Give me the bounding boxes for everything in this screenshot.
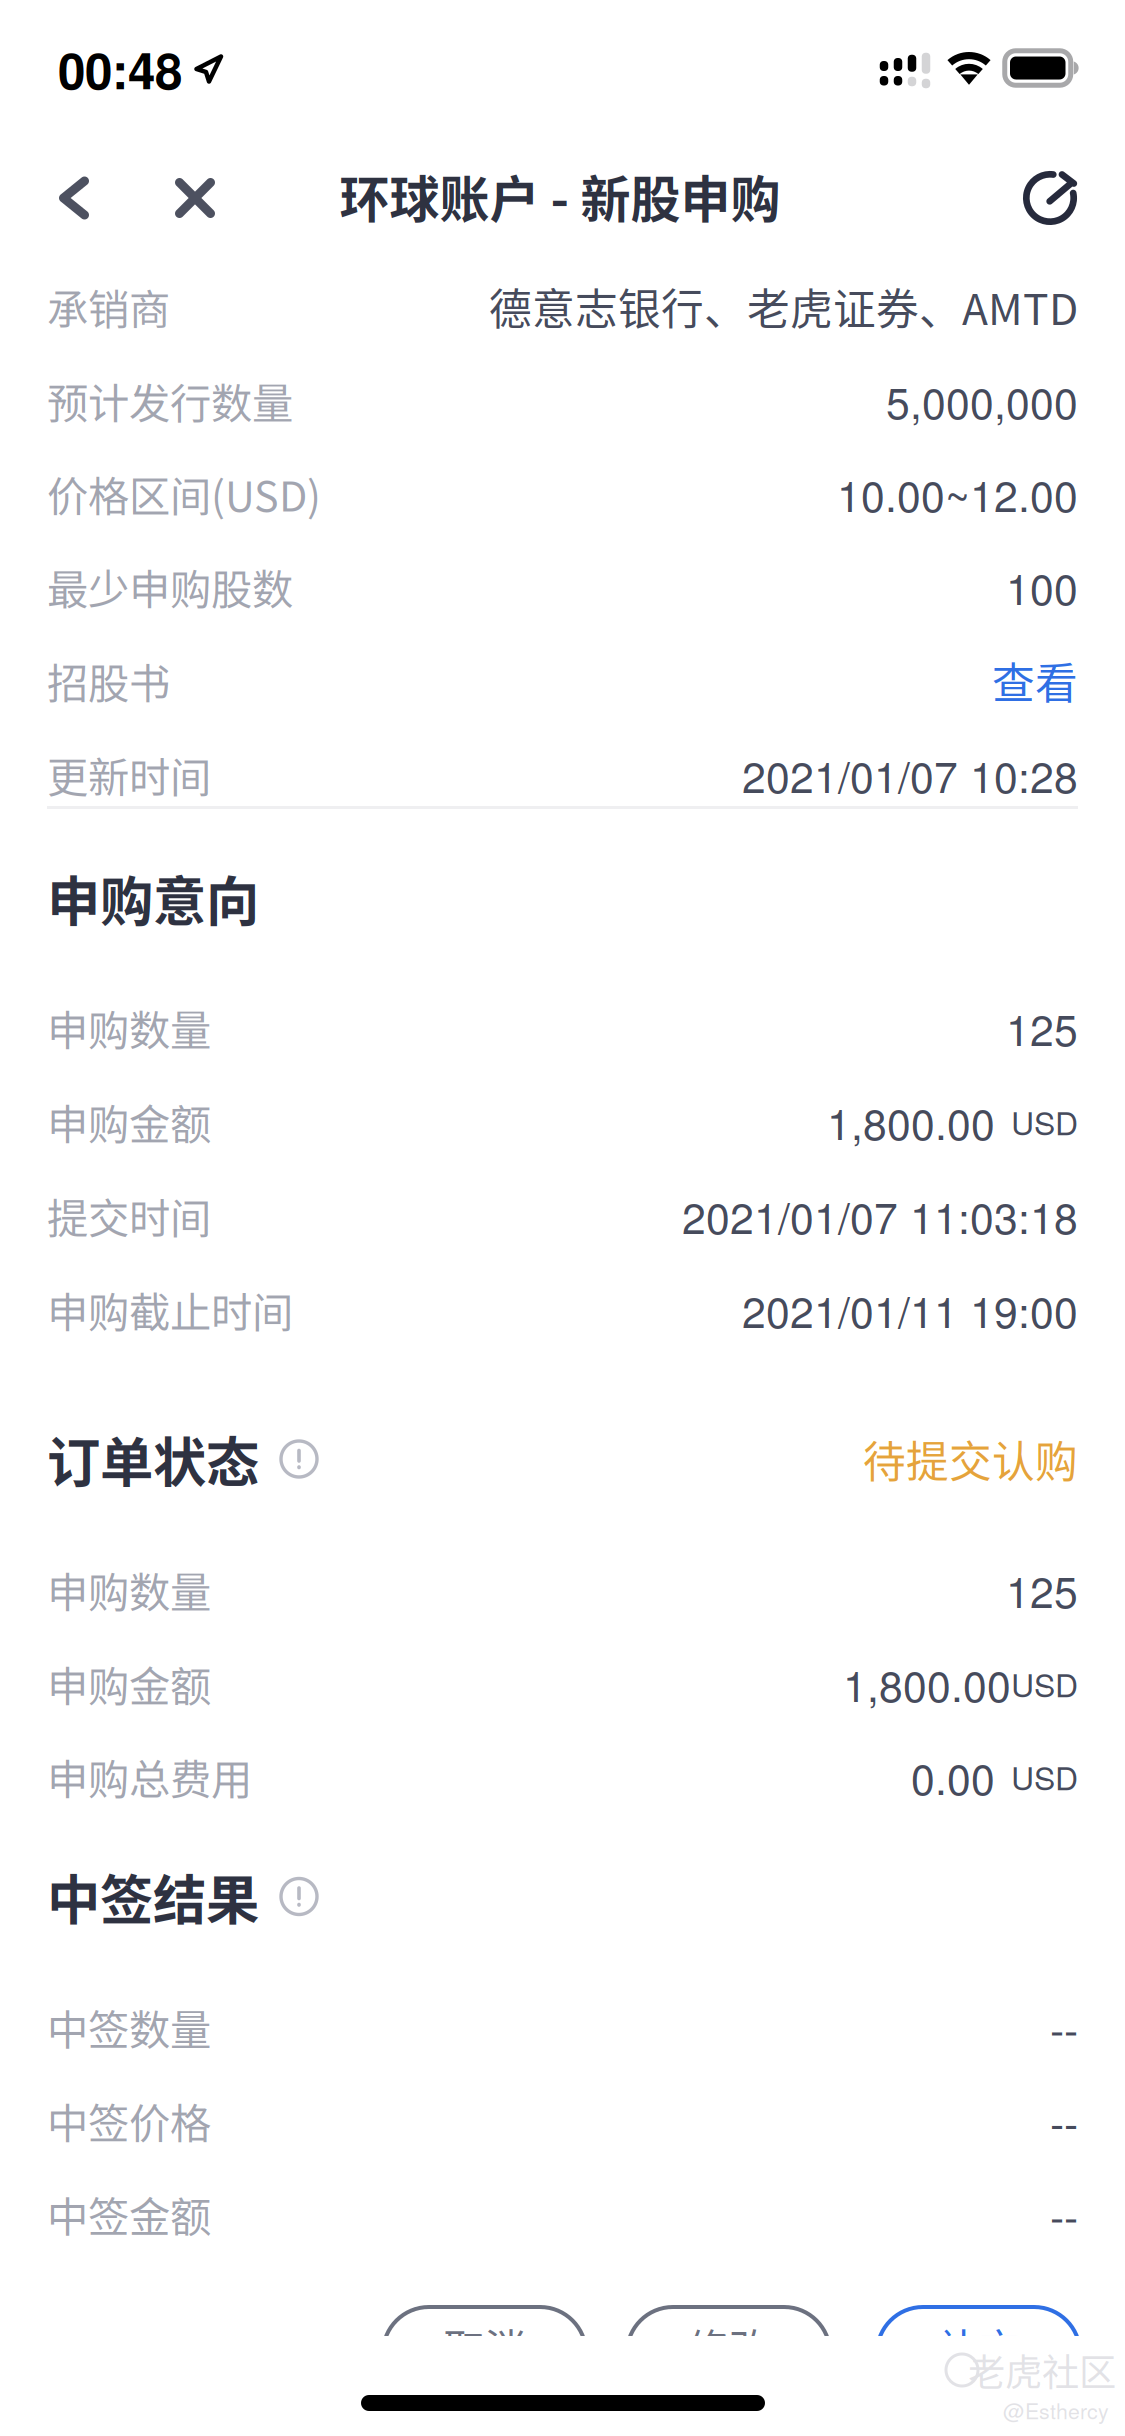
button[interactable]: Refresh [1002,150,1098,246]
staticText: 招股书 [47,651,170,710]
staticText: 申购意向 [47,859,259,937]
staticText: 承销商 [47,277,170,336]
staticText: 申购数量 [47,998,211,1057]
staticText: 德意志银行、老虎证券、AMTD [489,276,1078,337]
staticText: 2021/01/07 10:28 [742,744,1078,805]
staticText: 申购截止时间 [47,1280,293,1339]
staticText: 取消 [443,2316,525,2376]
staticText: USD [1011,1754,1078,1799]
staticText: 提交时间 [47,1186,211,1245]
staticText: 环球账户 - 新股申购 [339,160,780,232]
staticText: 价格区间(USD) [47,464,321,523]
staticText: 100 [1006,556,1078,617]
staticText: 申购总费用 [47,1747,252,1806]
staticText: -- [1050,1996,1078,2058]
button[interactable]: 取消 [383,2307,586,2399]
staticText: 0.00 [911,1746,995,1807]
staticText: 申购数量 [47,1560,211,1619]
staticText: 预计发行数量 [47,371,293,430]
staticText: 10.00~12.00 [837,463,1078,524]
staticText: 2021/01/11 19:00 [742,1279,1078,1340]
staticText: 1,800.00 [843,1653,1011,1714]
staticText: USD [1011,1661,1078,1706]
staticText: 1,800.00 [827,1091,995,1152]
staticText: 补充 [937,2316,1019,2376]
button[interactable]: 招股书 [47,650,1078,710]
staticText: 中签价格 [47,2091,211,2150]
button[interactable]: 补充 [877,2307,1080,2399]
staticText: -- [1050,2090,1078,2151]
staticText: 申购金额 [47,1092,211,1151]
staticText: 5,000,000 [886,370,1078,431]
staticText: -- [1050,2183,1078,2245]
staticText: 申购金额 [47,1654,211,1713]
staticText: USD [1011,1099,1078,1144]
staticText: 125 [1006,1559,1078,1620]
staticText: 中签数量 [47,1997,211,2057]
staticText: 修改 [687,2316,769,2376]
staticText: 中签结果 [47,1858,259,1935]
staticText: 订单状态 [47,1420,259,1498]
staticText: 2021/01/07 11:03:18 [682,1185,1078,1246]
staticText: 00:48 [58,34,182,104]
button[interactable]: 修改 [627,2307,830,2399]
staticText: 最少申购股数 [47,557,293,616]
staticText: 查看 [992,650,1078,711]
staticText: 待提交认购 [863,1428,1078,1490]
staticText: @Esthercy [1003,2395,1109,2425]
staticText: 中签金额 [47,2184,211,2244]
staticText: 125 [1006,997,1078,1058]
staticText: 老虎社区 [968,2343,1116,2397]
button[interactable]: Back [26,150,122,246]
button[interactable]: Close [147,150,243,246]
staticText: 更新时间 [47,745,211,804]
